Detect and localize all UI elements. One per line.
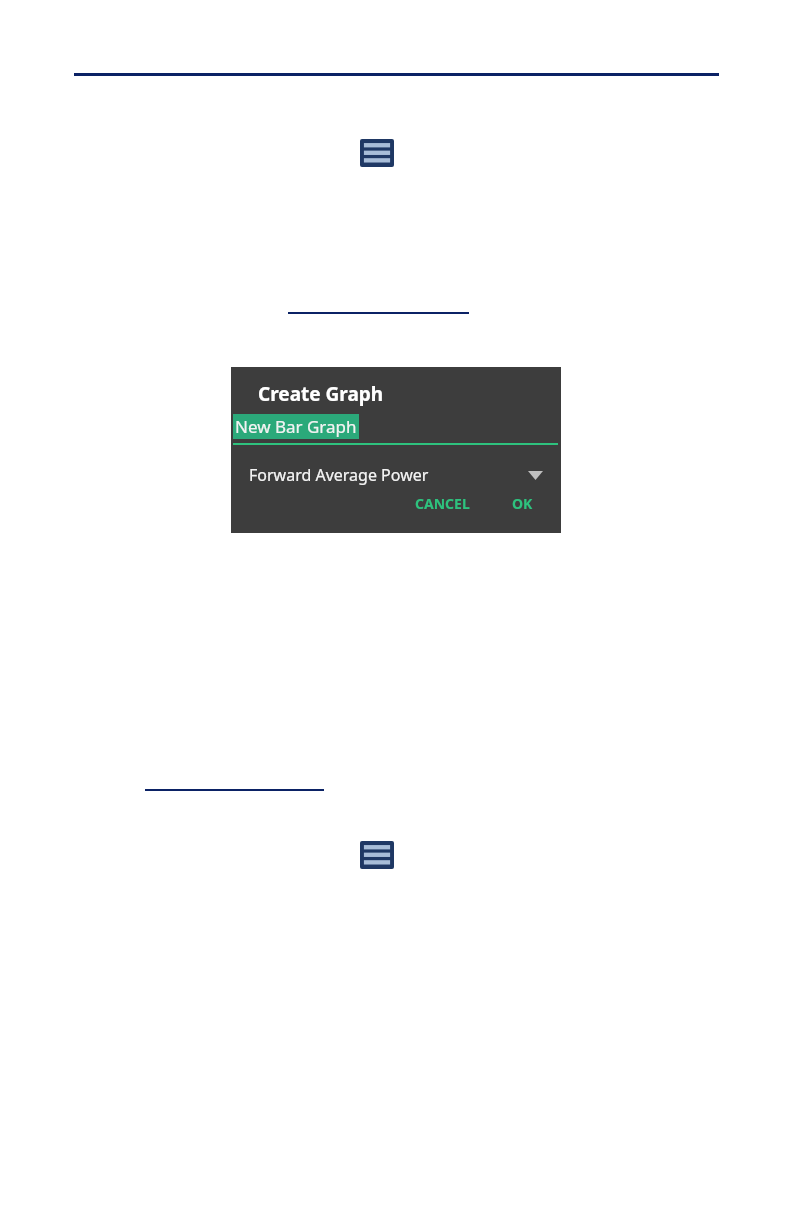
staticText: New Bar Graph bbox=[235, 415, 357, 438]
button[interactable]: Forward Average Power bbox=[231, 464, 561, 486]
button[interactable]: CANCEL bbox=[405, 488, 480, 519]
staticText: OK bbox=[512, 494, 533, 513]
staticText: Create Graph bbox=[258, 381, 384, 407]
button[interactable]: Menu bbox=[360, 841, 394, 869]
button[interactable]: Menu bbox=[360, 139, 394, 167]
staticText: CANCEL bbox=[415, 494, 470, 513]
button[interactable]: OK bbox=[502, 488, 543, 519]
button[interactable]: New Bar Graph bbox=[231, 414, 561, 445]
staticText: Forward Average Power bbox=[249, 464, 429, 486]
